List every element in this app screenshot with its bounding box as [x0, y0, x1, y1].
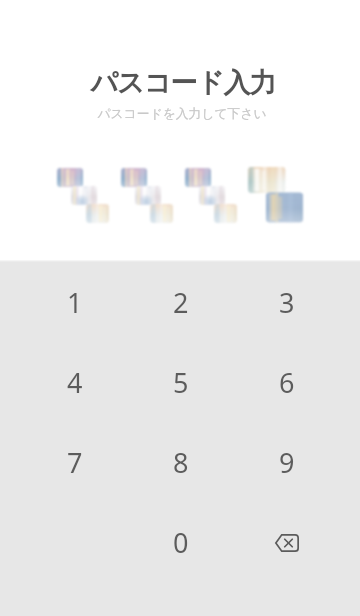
staticText: 0 [173, 524, 189, 561]
staticText: 4 [67, 364, 83, 401]
button[interactable]: Backspace [234, 502, 340, 582]
button[interactable]: 1 [22, 262, 128, 342]
staticText: 5 [173, 364, 189, 401]
staticText: 6 [279, 364, 295, 401]
button[interactable]: 6 [234, 342, 340, 422]
staticText: 8 [173, 444, 189, 481]
button[interactable]: 5 [128, 342, 234, 422]
staticText: 3 [279, 284, 295, 321]
staticText: パスコードを入力して下さい [97, 106, 267, 122]
button[interactable]: 7 [22, 422, 128, 502]
staticText: パスコード入力 [90, 66, 276, 100]
button[interactable]: 3 [234, 262, 340, 342]
staticText: 1 [67, 284, 83, 321]
other: Backspace [274, 534, 299, 552]
button[interactable]: 9 [234, 422, 340, 502]
button[interactable]: 2 [128, 262, 234, 342]
staticText: 9 [279, 444, 295, 481]
button[interactable]: 8 [128, 422, 234, 502]
staticText: 2 [173, 284, 189, 321]
button[interactable]: 4 [22, 342, 128, 422]
button[interactable]: 0 [128, 502, 234, 582]
staticText: 7 [67, 444, 83, 481]
